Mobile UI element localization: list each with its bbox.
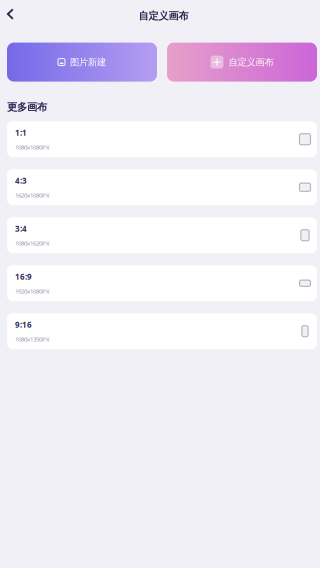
staticText: 1620x1080PX xyxy=(15,191,50,199)
staticText: 1920x1080PX xyxy=(15,287,50,295)
staticText: 3:4 xyxy=(15,223,27,234)
button[interactable]: 图片新建 xyxy=(7,43,157,82)
staticText: 图片新建 xyxy=(70,56,106,68)
staticText: 1080x1350PX xyxy=(15,335,50,343)
button[interactable]: 1:1 xyxy=(7,121,317,157)
staticText: 更多画布 xyxy=(7,101,47,113)
button[interactable]: 9:16 xyxy=(7,313,317,349)
staticText: 4:3 xyxy=(15,175,27,186)
staticText: 1:1 xyxy=(15,127,27,138)
button[interactable]: 4:3 xyxy=(7,169,317,205)
staticText: 16:9 xyxy=(15,271,32,282)
staticText: 自定义画布 xyxy=(138,9,188,22)
button[interactable]: 3:4 xyxy=(7,217,317,253)
button[interactable]: Back xyxy=(1,3,20,25)
button[interactable]: 自定义画布 xyxy=(167,43,317,82)
button[interactable]: 16:9 xyxy=(7,265,317,301)
staticText: 9:16 xyxy=(15,319,32,330)
staticText: 1080x1080PX xyxy=(15,143,50,151)
staticText: 自定义画布 xyxy=(228,56,273,68)
staticText: 1080x1620PX xyxy=(15,239,50,247)
